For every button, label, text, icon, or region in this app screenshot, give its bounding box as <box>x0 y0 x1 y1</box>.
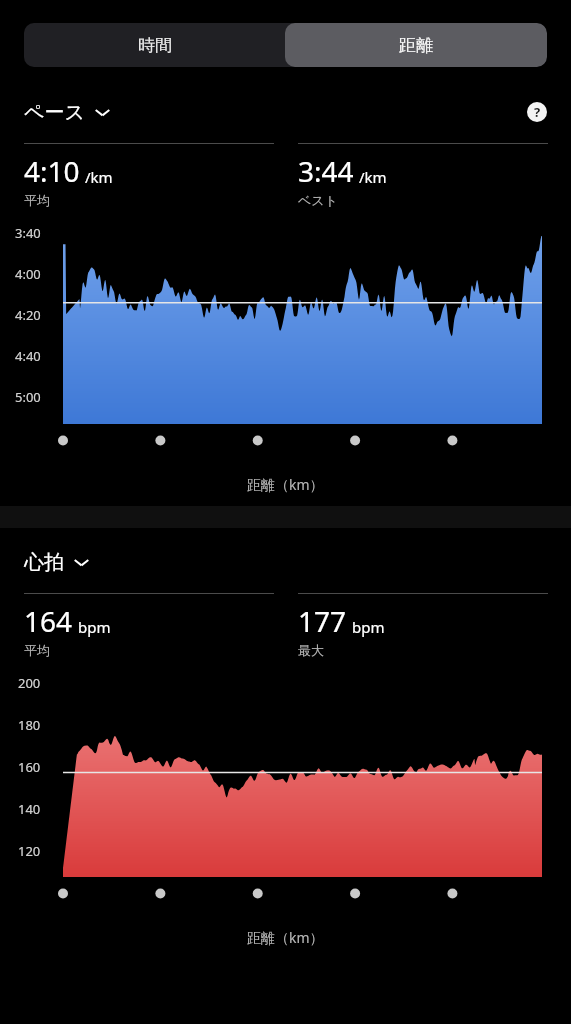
staticText: 160 <box>18 758 41 776</box>
button[interactable]: 177 <box>298 593 548 658</box>
staticText: 最大 <box>298 642 324 658</box>
staticText: ペース <box>24 100 85 125</box>
staticText: 140 <box>18 800 41 818</box>
staticText: 4:40 <box>15 347 41 365</box>
button[interactable]: 距離 <box>285 23 547 67</box>
button[interactable]: ペース <box>24 100 111 125</box>
staticText: 4:10 <box>24 152 80 190</box>
button[interactable]: 164 <box>24 593 274 658</box>
button[interactable]: Help <box>524 99 550 125</box>
staticText: /km <box>359 167 387 187</box>
staticText: 距離（km） <box>247 928 324 947</box>
staticText: 164 <box>24 602 73 640</box>
staticText: ベスト <box>298 192 338 208</box>
staticText: 120 <box>18 842 41 860</box>
button[interactable]: 心拍 <box>24 550 90 575</box>
staticText: 距離 <box>399 35 433 56</box>
staticText: 3:44 <box>298 152 354 190</box>
staticText: 距離（km） <box>247 475 324 494</box>
staticText: 177 <box>298 602 347 640</box>
button[interactable]: 4:10 <box>24 143 274 208</box>
staticText: 4:20 <box>15 306 41 324</box>
staticText: bpm <box>78 617 111 637</box>
staticText: 5:00 <box>15 388 41 406</box>
staticText: /km <box>85 167 113 187</box>
staticText: ? <box>534 103 541 121</box>
button[interactable]: 時間 <box>24 23 285 67</box>
staticText: 時間 <box>138 35 172 56</box>
staticText: 平均 <box>24 642 50 658</box>
staticText: 180 <box>18 716 41 734</box>
staticText: 平均 <box>24 192 50 208</box>
staticText: 心拍 <box>24 550 64 575</box>
staticText: bpm <box>352 617 385 637</box>
staticText: 3:40 <box>15 224 41 242</box>
staticText: 200 <box>18 674 41 692</box>
staticText: 4:00 <box>15 265 41 283</box>
button[interactable]: 3:44 <box>298 143 548 208</box>
